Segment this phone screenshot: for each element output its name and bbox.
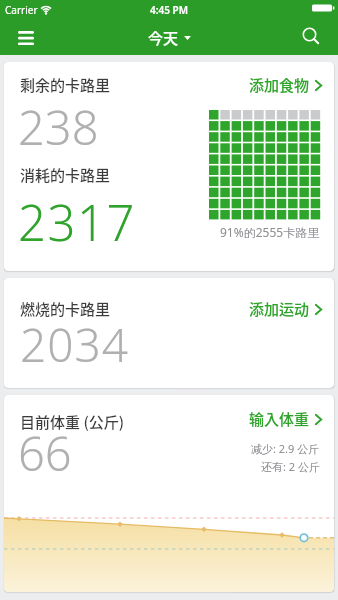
button[interactable]: 添加食物	[249, 74, 322, 96]
staticText: 还有: 2 公斤	[261, 459, 320, 474]
staticText: 剩余的卡路里	[20, 74, 111, 96]
staticText: 4:45 PM	[150, 3, 188, 17]
button[interactable]	[11, 23, 41, 53]
button[interactable]: 添加运动	[249, 298, 322, 320]
button[interactable]: 今天	[148, 27, 191, 49]
staticText: 66	[18, 421, 72, 485]
staticText: 238	[18, 95, 99, 159]
staticText: 添加食物	[249, 74, 310, 96]
staticText: 消耗的卡路里	[20, 164, 111, 186]
staticText: 91%的2555卡路里	[220, 224, 320, 240]
staticText: 目前体重 (公斤)	[20, 411, 125, 433]
button[interactable]	[296, 23, 326, 53]
button[interactable]: 输入体重	[249, 408, 322, 430]
staticText: 减少: 2.9 公斤	[251, 441, 320, 456]
staticText: 燃烧的卡路里	[20, 298, 111, 320]
staticText: 添加运动	[249, 298, 310, 320]
staticText: 2034	[20, 313, 130, 376]
staticText: 今天	[148, 27, 179, 49]
staticText: Carrier	[5, 3, 38, 17]
staticText: 2317	[18, 189, 136, 256]
staticText: 输入体重	[249, 408, 310, 430]
